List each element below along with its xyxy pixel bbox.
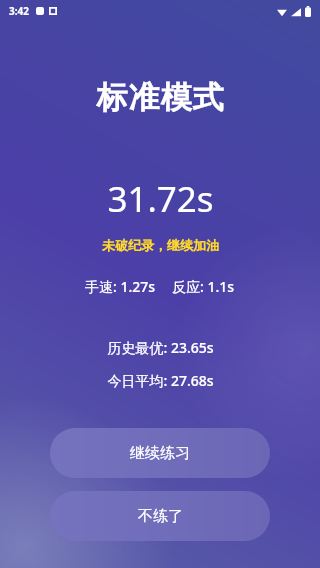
staticText: 今日平均: 27.68s [107,371,214,390]
staticText: 31.72s [107,175,214,223]
staticText: 继续练习 [130,444,190,463]
button[interactable]: 继续练习 [50,428,270,478]
staticText: 未破纪录，继续加油 [102,237,219,253]
staticText: 手速: 1.27s [85,277,156,296]
staticText: 反应: 1.1s [172,277,235,296]
button[interactable]: 不练了 [50,491,270,541]
staticText: 不练了 [138,507,183,526]
staticText: 历史最优: 23.65s [107,338,214,357]
staticText: 3:42 [9,4,29,18]
staticText: 标准模式 [96,78,224,117]
